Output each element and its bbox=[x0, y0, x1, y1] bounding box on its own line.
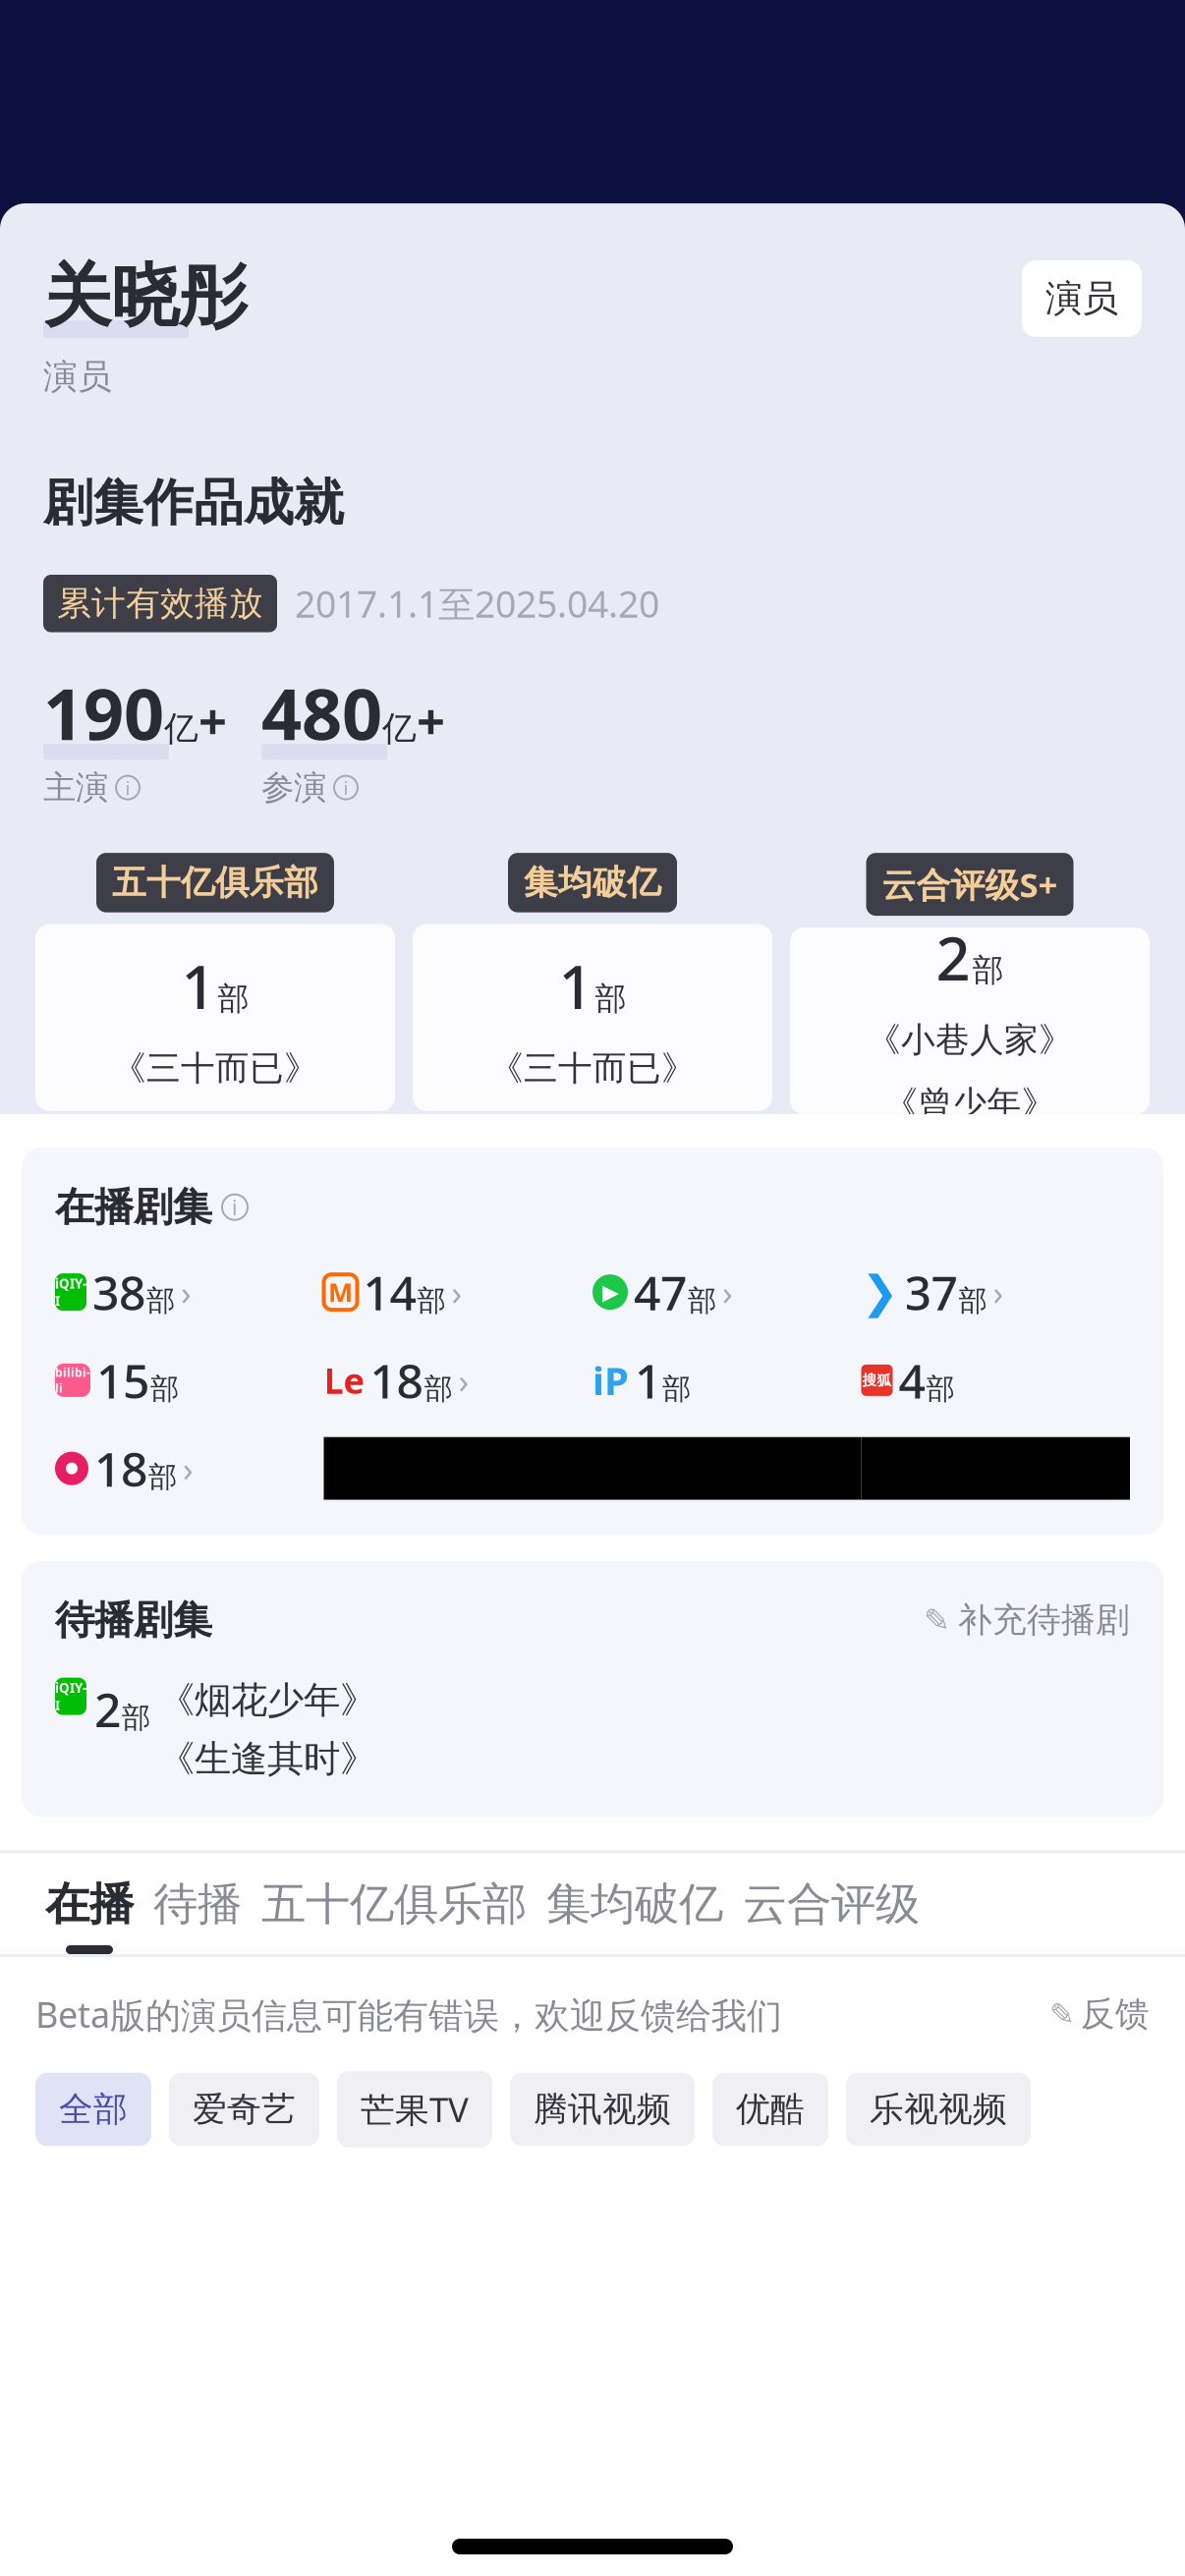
staticText: 优酷 bbox=[736, 2088, 805, 2130]
staticText: 部 bbox=[688, 1283, 716, 1318]
staticText: 集均破亿 bbox=[524, 862, 661, 904]
button[interactable]: 集均破亿 bbox=[536, 1877, 733, 1954]
staticText: 云合评级S+ bbox=[882, 862, 1058, 907]
staticText: 部 bbox=[972, 951, 1004, 990]
button[interactable]: 云合评级 bbox=[733, 1877, 930, 1954]
staticText: 芒果TV bbox=[361, 2087, 469, 2132]
button[interactable]: Le bbox=[324, 1349, 592, 1411]
staticText: 部 bbox=[146, 1283, 175, 1318]
staticText: › bbox=[722, 1269, 733, 1315]
staticText: ▶ bbox=[602, 1279, 619, 1305]
button[interactable]: ✎ bbox=[1049, 1993, 1150, 2035]
staticText: ✎ bbox=[924, 1602, 950, 1638]
staticText: 待播剧集 bbox=[55, 1596, 212, 1644]
staticText: bilibili bbox=[55, 1365, 90, 1396]
button[interactable]: 演员 bbox=[1022, 260, 1142, 337]
staticText: 1 bbox=[635, 1349, 661, 1411]
staticText: ✎ bbox=[1049, 1997, 1075, 2031]
button[interactable]: 待播 bbox=[143, 1877, 252, 1954]
staticText: iQIYI bbox=[55, 1679, 86, 1714]
staticText: 部 bbox=[122, 1700, 150, 1735]
button[interactable]: ✎ bbox=[924, 1599, 1130, 1641]
staticText: Le bbox=[324, 1357, 364, 1404]
staticText: 反馈 bbox=[1081, 1993, 1150, 2035]
button[interactable]: More bbox=[988, 143, 1075, 210]
staticText: 主演 bbox=[43, 767, 108, 808]
button[interactable]: iQIYI bbox=[55, 1261, 324, 1323]
staticText: 参演 bbox=[261, 767, 326, 808]
staticText: + bbox=[417, 688, 445, 754]
button[interactable]: 18 bbox=[55, 1437, 324, 1500]
staticText: 亿 bbox=[164, 708, 198, 750]
staticText: 五十亿俱乐部 bbox=[112, 862, 318, 904]
staticText: 《三十而已》 bbox=[112, 1047, 318, 1089]
staticText: › bbox=[183, 1446, 194, 1491]
staticText: › bbox=[181, 1269, 192, 1315]
staticText: 爱奇艺 bbox=[193, 2088, 296, 2130]
staticText: 全部 bbox=[59, 2088, 128, 2130]
staticText: 1 bbox=[559, 946, 593, 1026]
staticText: 待播 bbox=[153, 1877, 242, 1932]
staticText: 18 bbox=[94, 1437, 147, 1500]
staticText: 《曾少年》 bbox=[884, 1083, 1056, 1124]
staticText: 剧集作品成就 bbox=[43, 472, 344, 533]
button[interactable]: 全部 bbox=[35, 2073, 151, 2146]
staticText: › bbox=[993, 1269, 1004, 1315]
staticText: 部 bbox=[959, 1283, 987, 1318]
staticText: 47 bbox=[634, 1261, 687, 1323]
staticText: 2 bbox=[936, 917, 970, 997]
staticText: 480 bbox=[261, 666, 382, 760]
staticText: ❯ bbox=[861, 1267, 899, 1317]
button[interactable]: M bbox=[324, 1261, 592, 1323]
button[interactable]: 芒果TV bbox=[337, 2071, 492, 2148]
button[interactable]: Close bbox=[1077, 143, 1163, 210]
staticText: 部 bbox=[218, 979, 249, 1018]
button[interactable]: 搜狐 bbox=[861, 1349, 1130, 1411]
button[interactable]: Back bbox=[0, 140, 85, 213]
staticText: 《三十而已》 bbox=[489, 1047, 696, 1089]
button[interactable]: 在播 bbox=[35, 1877, 143, 1954]
staticText: 2017.1.1至2025.04.20 bbox=[295, 579, 659, 628]
staticText: 云合评级 bbox=[743, 1877, 920, 1932]
button[interactable]: 五十亿俱乐部 bbox=[252, 1877, 536, 1954]
button[interactable]: 爱奇艺 bbox=[169, 2073, 319, 2146]
button[interactable]: ❯ bbox=[861, 1261, 1130, 1323]
staticText: 补充待播剧 bbox=[958, 1599, 1130, 1641]
staticText: 2 bbox=[94, 1678, 121, 1740]
button[interactable]: 腾讯视频 bbox=[510, 2073, 695, 2146]
staticText: i bbox=[232, 1193, 238, 1221]
staticText: 部 bbox=[595, 979, 626, 1018]
staticText: 38 bbox=[92, 1261, 145, 1323]
staticText: 在播剧集 bbox=[55, 1183, 212, 1231]
staticText: › bbox=[458, 1358, 469, 1403]
staticText: 云合数据 bbox=[500, 149, 685, 205]
staticText: 190 bbox=[43, 666, 164, 760]
staticText: 《生逢其时》 bbox=[158, 1736, 376, 1782]
button[interactable]: 优酷 bbox=[712, 2073, 828, 2146]
staticText: 《小巷人家》 bbox=[867, 1019, 1073, 1061]
staticText: i bbox=[125, 775, 130, 800]
staticText: M bbox=[328, 1275, 353, 1309]
staticText: 37 bbox=[904, 1261, 958, 1323]
staticText: 部 bbox=[424, 1371, 452, 1407]
staticText: 关晓彤 bbox=[43, 254, 247, 338]
staticText: 腾讯视频 bbox=[534, 2088, 671, 2130]
staticText: i bbox=[343, 775, 348, 800]
button[interactable]: 乐视视频 bbox=[846, 2073, 1031, 2146]
button[interactable]: bilibili bbox=[55, 1349, 324, 1411]
staticText: Beta版的演员信息可能有错误，欢迎反馈给我们 bbox=[35, 1990, 782, 2038]
staticText: 4 bbox=[899, 1349, 925, 1411]
staticText: 部 bbox=[926, 1371, 955, 1407]
staticText: 1 bbox=[181, 946, 216, 1026]
staticText: 亿 bbox=[382, 708, 417, 750]
staticText: + bbox=[198, 688, 227, 754]
staticText: › bbox=[451, 1269, 462, 1315]
button[interactable]: iP bbox=[592, 1349, 861, 1411]
staticText: 《烟花少年》 bbox=[158, 1678, 376, 1723]
button[interactable]: ▶ bbox=[592, 1261, 861, 1323]
